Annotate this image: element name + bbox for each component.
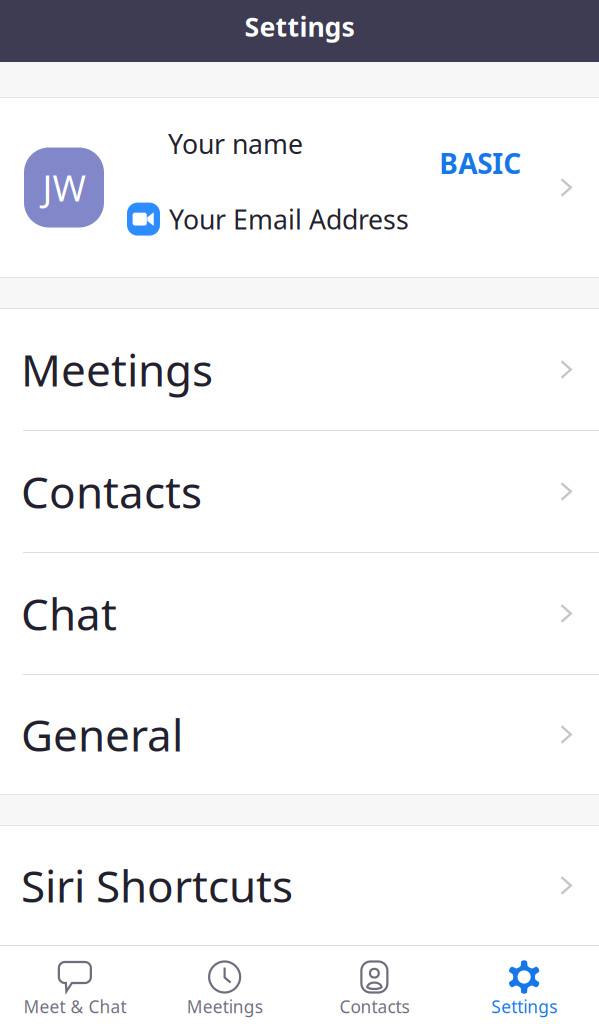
staticText: JW [42, 164, 85, 211]
staticText: Your name [168, 126, 303, 161]
button[interactable]: Siri Shortcuts [0, 826, 599, 945]
staticText: Siri Shortcuts [21, 856, 293, 915]
staticText: Meetings [187, 995, 263, 1018]
button[interactable]: Meetings [0, 309, 599, 430]
staticText: BASIC [439, 144, 521, 182]
button[interactable]: General [0, 675, 599, 794]
staticText: Your Email Address [169, 201, 409, 237]
button[interactable]: JW [0, 98, 599, 277]
button[interactable]: Contacts [299, 946, 449, 1024]
staticText: Meetings [21, 340, 213, 399]
staticText: Meet & Chat [23, 995, 126, 1018]
button[interactable]: Settings [449, 946, 599, 1024]
staticText: Chat [21, 584, 117, 643]
button[interactable]: Chat [0, 553, 599, 674]
staticText: Contacts [339, 995, 409, 1018]
button[interactable]: Meet & Chat [0, 946, 150, 1024]
staticText: Settings [244, 9, 354, 44]
button[interactable]: Contacts [0, 431, 599, 552]
staticText: Settings [491, 995, 557, 1018]
button[interactable]: Meetings [150, 946, 300, 1024]
staticText: General [21, 705, 183, 764]
staticText: Contacts [21, 462, 202, 521]
